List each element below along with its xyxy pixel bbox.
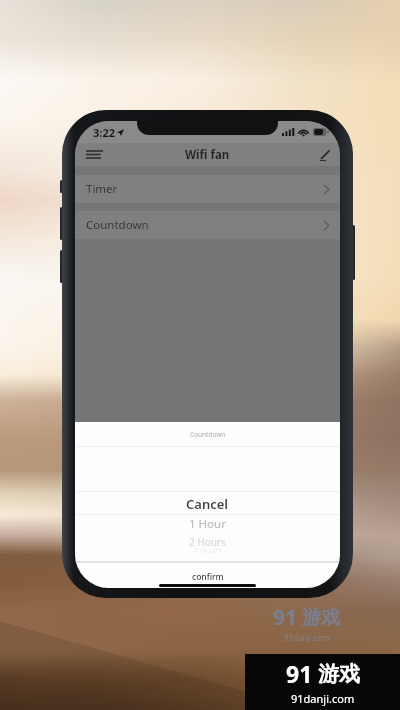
staticText: Wifi fan — [185, 147, 230, 163]
staticText: 游戏 — [318, 661, 360, 687]
button[interactable]: Edit — [310, 143, 340, 166]
staticText: 91danji.com — [291, 691, 355, 706]
staticText: 91 — [273, 603, 298, 632]
staticText: Timer — [86, 181, 118, 197]
staticText: Countdown — [86, 217, 149, 233]
staticText: 91danji.com — [284, 632, 330, 643]
button[interactable]: Countdown — [75, 211, 340, 239]
button[interactable]: confirm — [75, 569, 340, 585]
staticText: 3 Hours — [194, 545, 222, 555]
staticText: Countdown — [190, 430, 226, 439]
staticText: Cancel — [186, 495, 229, 513]
button[interactable]: 2 Hours — [75, 532, 340, 551]
staticText: 3:22 — [93, 125, 115, 140]
staticText: 2 Hours — [189, 535, 226, 549]
button[interactable]: Timer — [75, 175, 340, 203]
staticText: 游戏 — [302, 606, 340, 630]
button[interactable]: 1 Hour — [75, 513, 340, 535]
button[interactable]: Menu — [79, 143, 109, 166]
staticText: 91 — [286, 658, 313, 689]
button[interactable]: Cancel — [75, 491, 340, 516]
staticText: 1 Hour — [189, 516, 226, 532]
staticText: confirm — [192, 571, 224, 583]
